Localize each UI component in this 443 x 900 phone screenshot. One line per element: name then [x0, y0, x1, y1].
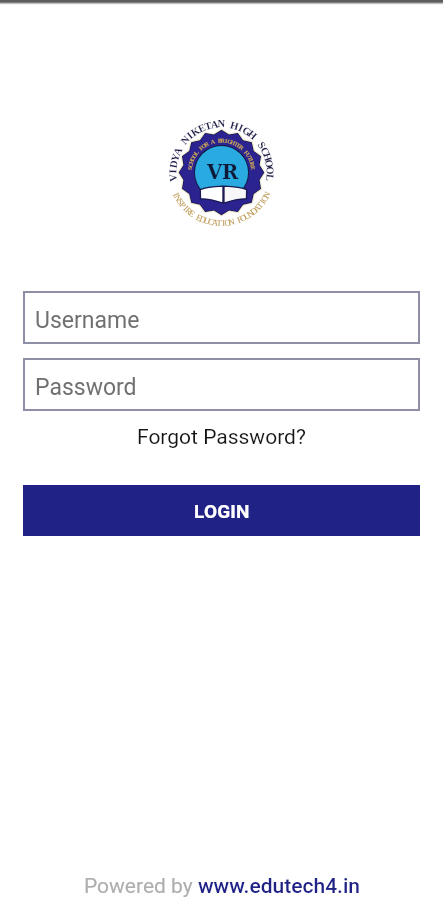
button[interactable]: Password [23, 358, 420, 411]
staticText: www.edutech4.in [198, 874, 360, 899]
staticText: Username [35, 307, 140, 334]
button[interactable]: LOGIN [23, 485, 420, 536]
staticText: Password [35, 374, 137, 401]
staticText: Powered by [84, 874, 198, 899]
button[interactable]: Username [23, 291, 420, 344]
staticText: LOGIN [194, 500, 250, 522]
button[interactable]: Forgot Password? [137, 425, 306, 450]
